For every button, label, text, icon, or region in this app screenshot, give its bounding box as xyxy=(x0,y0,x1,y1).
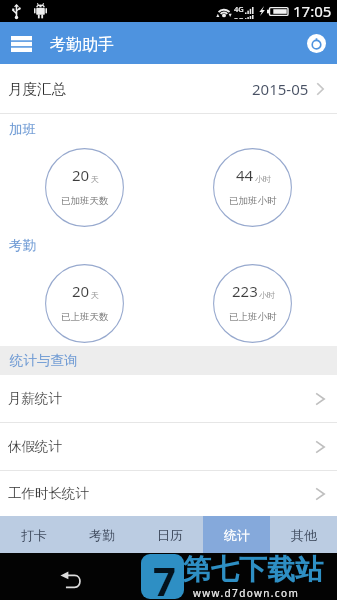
staticText: 打卡 xyxy=(21,527,47,543)
staticText: 考勤 xyxy=(89,527,115,543)
button[interactable]: 其他 xyxy=(270,516,337,553)
button[interactable]: 20 xyxy=(45,148,124,227)
button[interactable]: 休假统计 xyxy=(0,423,337,470)
staticText: 统计 xyxy=(224,527,250,543)
staticText: 2015-05 xyxy=(252,79,309,99)
staticText: 月薪统计 xyxy=(8,390,62,407)
button[interactable]: 统计 xyxy=(203,516,270,553)
staticText: 20 xyxy=(72,281,90,301)
button[interactable]: 20 xyxy=(45,264,124,343)
button[interactable]: Menu xyxy=(5,22,37,64)
staticText: 2G xyxy=(234,15,244,19)
staticText: 天 xyxy=(91,174,99,184)
staticText: www.d7down.com xyxy=(193,586,300,600)
staticText: 考勤助手 xyxy=(50,35,114,55)
staticText: 小时 xyxy=(259,290,275,300)
staticText: 20 xyxy=(72,165,90,185)
staticText: 已加班小时 xyxy=(229,195,277,207)
button[interactable]: 223 xyxy=(213,264,292,343)
staticText: 考勤 xyxy=(9,237,36,254)
staticText: 日历 xyxy=(157,527,183,543)
staticText: 44 xyxy=(236,165,254,185)
button[interactable]: 打卡 xyxy=(0,516,68,553)
button[interactable]: 月薪统计 xyxy=(0,375,337,422)
staticText: 休假统计 xyxy=(8,438,62,455)
staticText: 第七下载站 xyxy=(183,552,323,587)
staticText: 月度汇总 xyxy=(8,80,66,98)
staticText: 4G xyxy=(234,4,244,14)
button[interactable]: 工作时长统计 xyxy=(0,471,337,516)
staticText: 加班 xyxy=(9,121,36,138)
staticText: 223 xyxy=(232,281,258,301)
staticText: 7 xyxy=(153,554,176,598)
button[interactable]: 日历 xyxy=(136,516,203,553)
button[interactable]: 考勤 xyxy=(68,516,136,553)
staticText: 统计与查询 xyxy=(10,352,78,369)
button[interactable]: 44 xyxy=(213,148,292,227)
staticText: 其他 xyxy=(291,527,317,543)
button[interactable]: 月度汇总 xyxy=(0,64,337,113)
staticText: 已加班天数 xyxy=(61,195,109,207)
staticText: 17:05 xyxy=(293,1,332,21)
button[interactable]: Back xyxy=(58,566,84,592)
button[interactable]: Timer xyxy=(301,22,331,64)
staticText: 工作时长统计 xyxy=(8,485,89,502)
staticText: 小时 xyxy=(255,174,271,184)
staticText: 已上班小时 xyxy=(229,311,277,323)
staticText: 已上班天数 xyxy=(61,311,109,323)
staticText: 天 xyxy=(91,290,99,300)
